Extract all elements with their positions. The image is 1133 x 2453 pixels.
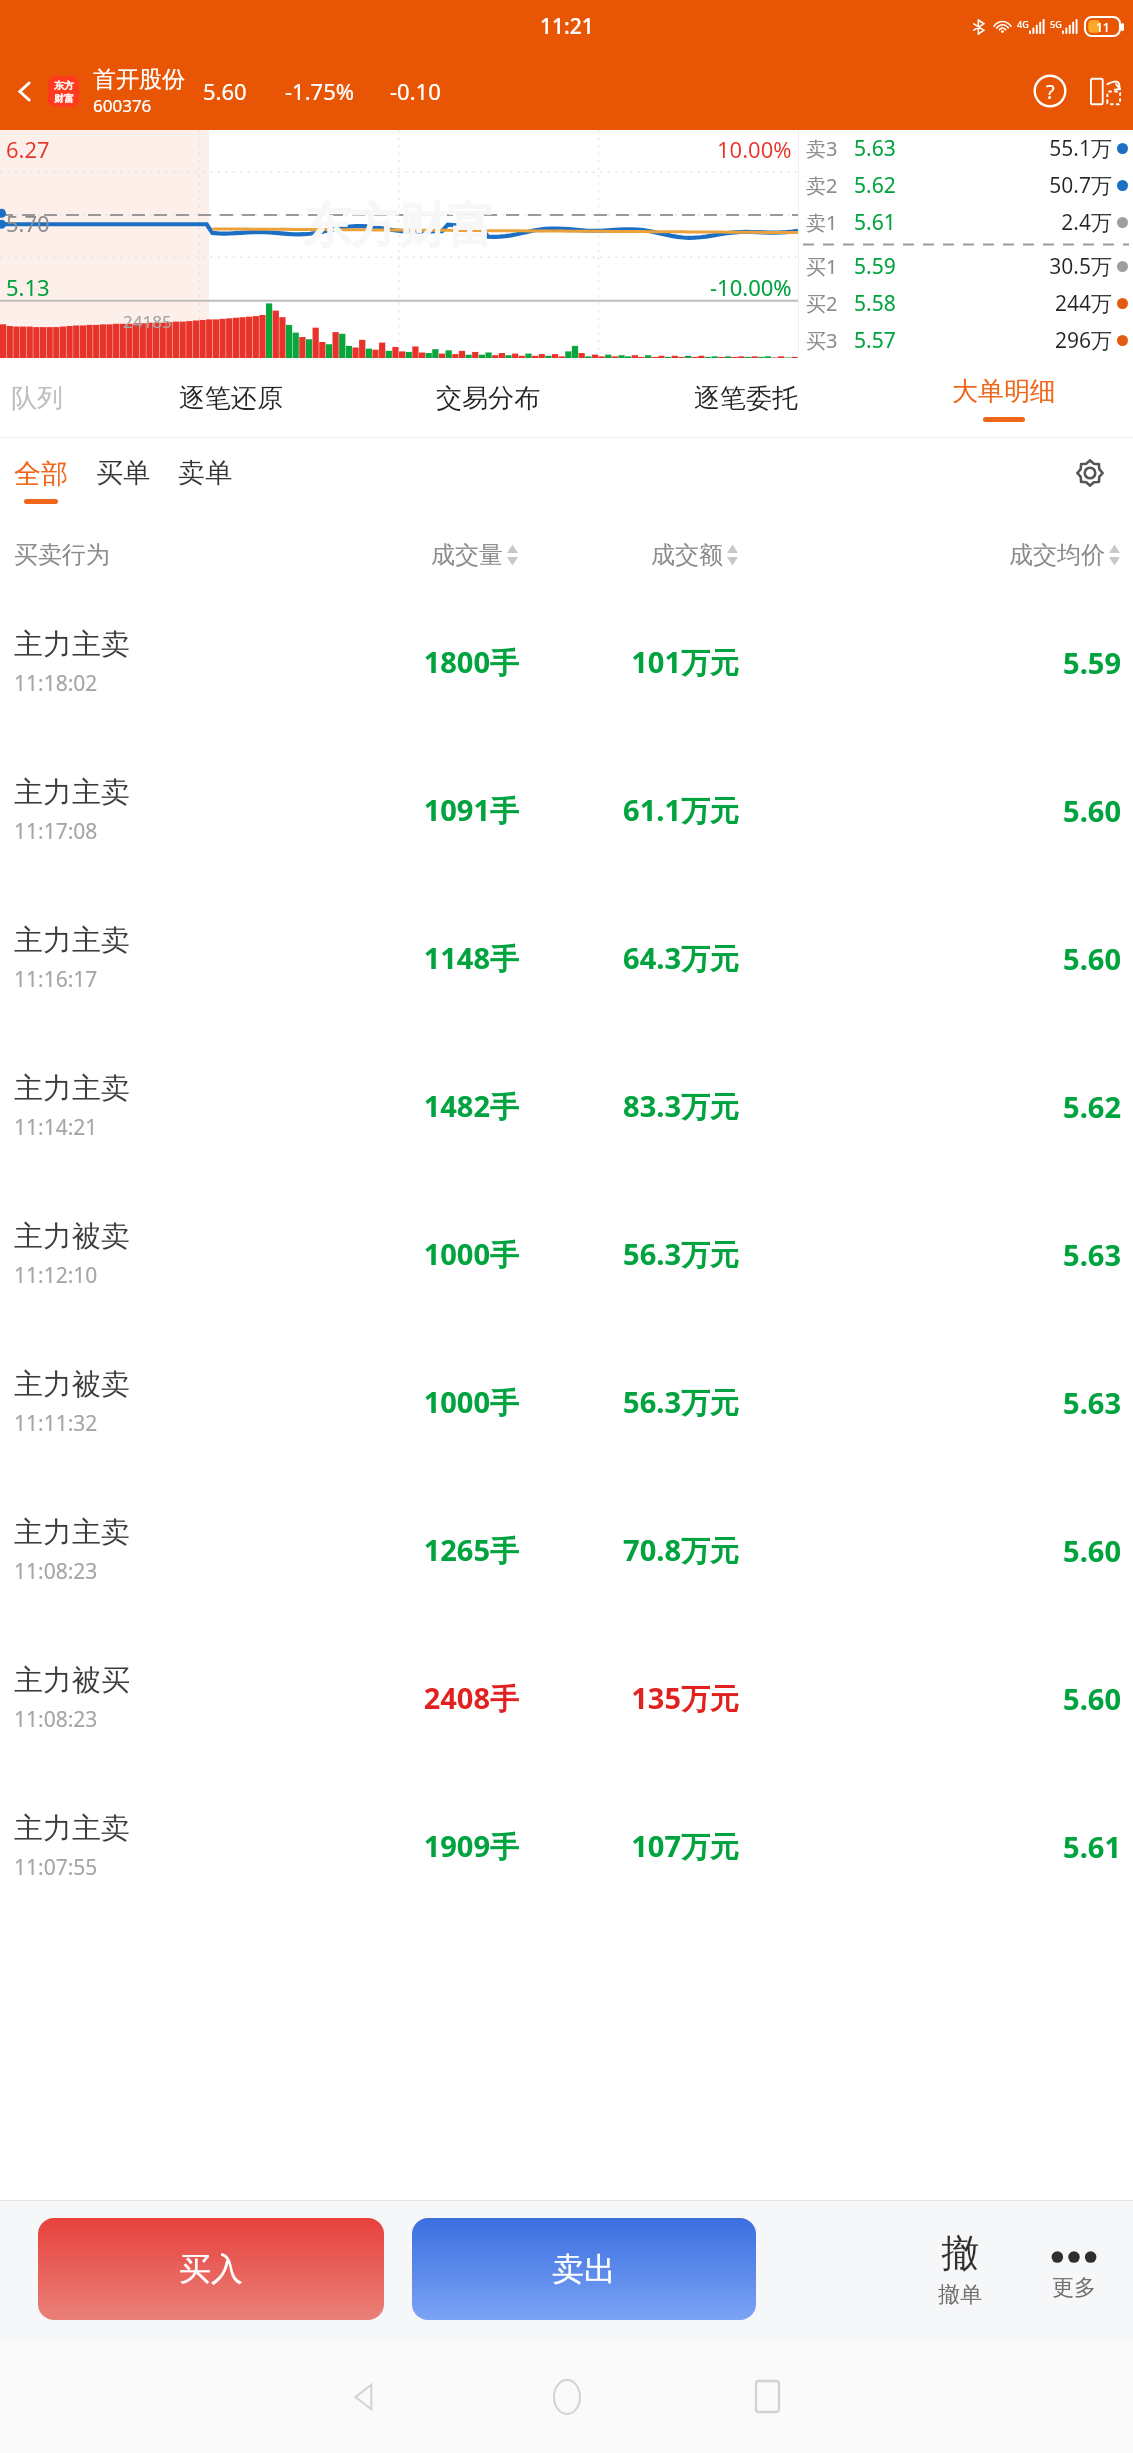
staticText: 买入: [179, 2249, 243, 2289]
button[interactable]: 主力主卖: [0, 588, 1133, 736]
staticText: 主力主卖: [14, 922, 130, 959]
staticText: 5.60: [203, 76, 285, 106]
staticText: 5.13: [6, 272, 50, 302]
staticText: 11:07:55: [14, 1853, 98, 1882]
staticText: 4G: [1017, 18, 1029, 30]
staticText: 东方: [54, 79, 74, 92]
staticText: 更多: [1052, 2274, 1096, 2302]
staticText: 5.59: [739, 643, 1121, 682]
staticText: 5.60: [739, 1531, 1121, 1570]
staticText: 1482手: [304, 1086, 519, 1126]
button[interactable]: 更多: [1015, 2218, 1133, 2320]
button[interactable]: Back: [0, 52, 48, 130]
staticText: 主力被买: [14, 1662, 130, 1699]
button[interactable]: 逐笔委托: [617, 358, 875, 438]
staticText: 5.63: [739, 1235, 1121, 1274]
button[interactable]: Compare: [1077, 63, 1133, 119]
button[interactable]: 主力被卖: [0, 1328, 1133, 1476]
staticText: 5.63: [854, 134, 910, 163]
staticText: 83.3万元: [519, 1086, 739, 1126]
staticText: 大单明细: [952, 375, 1056, 408]
staticText: 卖1: [806, 209, 854, 236]
staticText: 135万元: [519, 1678, 739, 1718]
staticText: 卖2: [806, 172, 854, 199]
staticText: 5.60: [739, 939, 1121, 978]
button[interactable]: 主力主卖: [0, 1772, 1133, 1920]
button[interactable]: 买1: [799, 248, 1133, 285]
staticText: 107万元: [519, 1826, 739, 1866]
button[interactable]: Home: [467, 2340, 667, 2453]
staticText: 主力主卖: [14, 626, 130, 663]
button[interactable]: Recents: [667, 2340, 867, 2453]
button[interactable]: 卖3: [799, 130, 1133, 167]
staticText: 1000手: [304, 1234, 519, 1274]
staticText: 逐笔委托: [694, 382, 798, 415]
staticText: 1091手: [304, 790, 519, 830]
staticText: 交易分布: [436, 382, 540, 415]
button[interactable]: 主力主卖: [0, 736, 1133, 884]
staticText: 主力被卖: [14, 1366, 130, 1403]
button[interactable]: 主力被卖: [0, 1180, 1133, 1328]
staticText: 56.3万元: [519, 1382, 739, 1422]
button[interactable]: 卖出: [412, 2218, 756, 2320]
staticText: 卖单: [178, 456, 232, 490]
staticText: 成交均价: [1009, 540, 1105, 570]
staticText: 财富: [54, 92, 74, 105]
staticText: 1000手: [304, 1382, 519, 1422]
button[interactable]: 买入: [38, 2218, 384, 2320]
staticText: 5.61: [854, 208, 910, 237]
button[interactable]: 全部: [14, 438, 68, 522]
staticText: 买卖行为: [14, 540, 304, 570]
staticText: 5.57: [854, 326, 910, 355]
staticText: -0.10: [390, 76, 468, 106]
staticText: 买1: [806, 253, 854, 280]
staticText: 11:08:23: [14, 1557, 98, 1586]
button[interactable]: 主力主卖: [0, 1476, 1133, 1624]
staticText: 5.62: [739, 1087, 1121, 1126]
button[interactable]: 主力主卖: [0, 884, 1133, 1032]
staticText: 11:11:32: [14, 1409, 98, 1438]
staticText: 5G: [1050, 18, 1062, 30]
staticText: 主力主卖: [14, 1810, 130, 1847]
button[interactable]: 交易分布: [359, 358, 617, 438]
staticText: 5.63: [739, 1383, 1121, 1422]
staticText: 买单: [96, 456, 150, 490]
button[interactable]: Settings: [1065, 448, 1115, 498]
button[interactable]: 队列: [0, 358, 102, 438]
button[interactable]: 买单: [96, 431, 150, 515]
staticText: 东方财富: [303, 196, 495, 256]
staticText: 5.58: [854, 289, 910, 318]
staticText: 296万: [910, 326, 1112, 355]
staticText: 1800手: [304, 642, 519, 682]
staticText: 主力主卖: [14, 1514, 130, 1551]
staticText: 5.62: [854, 171, 910, 200]
staticText: -10.00%: [710, 272, 792, 302]
button[interactable]: 逐笔还原: [102, 358, 359, 438]
staticText: 11:16:17: [14, 965, 98, 994]
button[interactable]: 大单明细: [875, 358, 1133, 438]
staticText: 101万元: [519, 642, 739, 682]
button[interactable]: 卖单: [178, 431, 232, 515]
button[interactable]: 买3: [799, 322, 1133, 358]
button[interactable]: 东方: [48, 76, 79, 107]
staticText: 卖出: [552, 2249, 616, 2289]
button[interactable]: Help: [1023, 64, 1077, 118]
button[interactable]: 卖2: [799, 167, 1133, 204]
staticText: 成交额: [651, 540, 723, 570]
button[interactable]: 买2: [799, 285, 1133, 322]
staticText: 11: [1096, 19, 1110, 35]
staticText: 主力被卖: [14, 1218, 130, 1255]
staticText: 撤单: [938, 2281, 982, 2309]
staticText: 主力主卖: [14, 774, 130, 811]
staticText: 30.5万: [910, 252, 1112, 281]
button[interactable]: 主力主卖: [0, 1032, 1133, 1180]
staticText: 70.8万元: [519, 1530, 739, 1570]
button[interactable]: 撤: [905, 2218, 1015, 2320]
staticText: 6.27: [6, 134, 50, 164]
staticText: 56.3万元: [519, 1234, 739, 1274]
button[interactable]: 主力被买: [0, 1624, 1133, 1772]
button[interactable]: 卖1: [799, 204, 1133, 241]
staticText: 5.59: [854, 252, 910, 281]
staticText: 50.7万: [910, 171, 1112, 200]
